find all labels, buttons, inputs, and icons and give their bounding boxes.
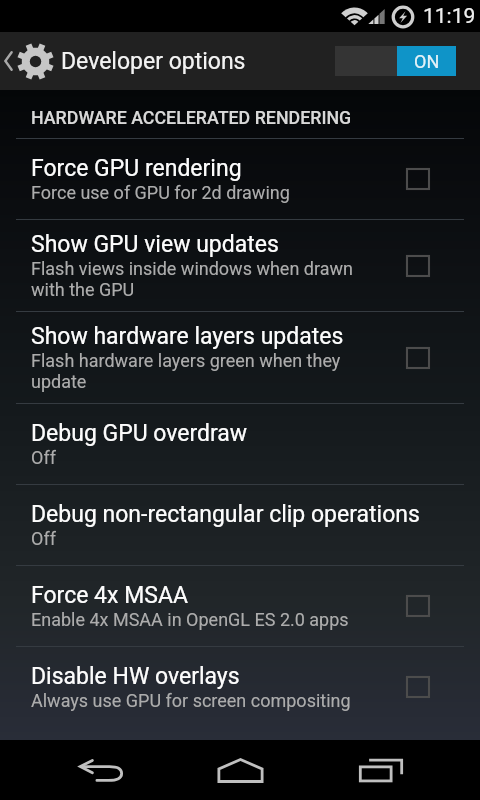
staticText: Show hardware layers updates bbox=[31, 323, 344, 350]
button[interactable]: Back bbox=[40, 740, 160, 800]
button[interactable]: Show hardware layers updates bbox=[0, 312, 480, 403]
staticText: Disable HW overlays bbox=[31, 663, 240, 690]
staticText: Flash views inside windows when drawn wi… bbox=[31, 258, 356, 300]
staticText: Off bbox=[31, 528, 56, 549]
button[interactable]: Recent apps bbox=[321, 740, 441, 800]
button[interactable]: Force 4x MSAA bbox=[0, 566, 480, 646]
staticText: Force GPU rendering bbox=[31, 155, 242, 182]
button[interactable]: Debug non-rectangular clip operations bbox=[0, 485, 480, 565]
button[interactable]: Developer options on bbox=[335, 46, 456, 76]
button[interactable]: Show GPU view updates bbox=[0, 220, 480, 311]
other: Navigate up bbox=[4, 51, 13, 71]
staticText: Enable 4x MSAA in OpenGL ES 2.0 apps bbox=[31, 609, 349, 630]
button[interactable]: Debug GPU overdraw bbox=[0, 404, 480, 484]
staticText: Force use of GPU for 2d drawing bbox=[31, 182, 290, 203]
button[interactable]: Disable HW overlays bbox=[0, 647, 480, 727]
button[interactable]: Home bbox=[180, 740, 300, 800]
staticText: Debug GPU overdraw bbox=[31, 420, 248, 447]
staticText: Always use GPU for screen compositing bbox=[31, 690, 351, 711]
staticText: Debug non-rectangular clip operations bbox=[31, 501, 420, 528]
button[interactable]: Navigate up bbox=[0, 32, 256, 90]
staticText: 11:19 bbox=[423, 4, 476, 29]
button[interactable]: Force GPU rendering bbox=[0, 139, 480, 219]
staticText: Developer options bbox=[61, 48, 246, 75]
staticText: Show GPU view updates bbox=[31, 231, 279, 258]
staticText: Off bbox=[31, 447, 56, 468]
staticText: ON bbox=[414, 51, 440, 72]
staticText: Flash hardware layers green when they up… bbox=[31, 350, 356, 392]
staticText: Force 4x MSAA bbox=[31, 582, 188, 609]
staticText: HARDWARE ACCELERATED RENDERING bbox=[31, 107, 352, 128]
